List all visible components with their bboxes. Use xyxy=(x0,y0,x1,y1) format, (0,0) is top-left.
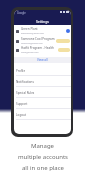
staticText: hatfit@gmail.com xyxy=(21,51,39,54)
button[interactable]: Support xyxy=(14,98,71,109)
button[interactable]: Special Rules xyxy=(14,87,71,98)
staticText: Profile xyxy=(16,69,26,73)
staticText: Someone Cool Program xyxy=(21,37,55,41)
staticText: somecool@gmail.com xyxy=(21,42,43,45)
staticText: greenplant@gmail.com xyxy=(21,32,44,35)
staticText: multiple accounts xyxy=(18,153,68,161)
button[interactable]: Notifications xyxy=(14,76,71,87)
button[interactable]: Logout xyxy=(14,109,71,120)
button[interactable]: Hatfit Program - Health xyxy=(14,45,71,55)
button[interactable]: Someone Cool Program xyxy=(14,36,71,46)
staticText: Special Rules xyxy=(16,91,35,95)
staticText: Support xyxy=(16,102,28,106)
staticText: View all xyxy=(37,58,48,62)
staticText: Settings xyxy=(36,19,49,24)
button[interactable]: View all xyxy=(14,57,71,63)
staticText: Green Plant xyxy=(21,27,38,31)
staticText: Hatfit Program - Health xyxy=(21,46,54,50)
button[interactable]: Profile xyxy=(14,65,71,76)
staticText: Logout xyxy=(16,113,26,117)
staticText: Manage xyxy=(31,142,54,150)
staticText: Google xyxy=(17,11,26,15)
staticText: all in one place xyxy=(22,164,64,172)
staticText: Notifications xyxy=(16,80,34,84)
button[interactable]: Green Plant xyxy=(14,26,71,36)
